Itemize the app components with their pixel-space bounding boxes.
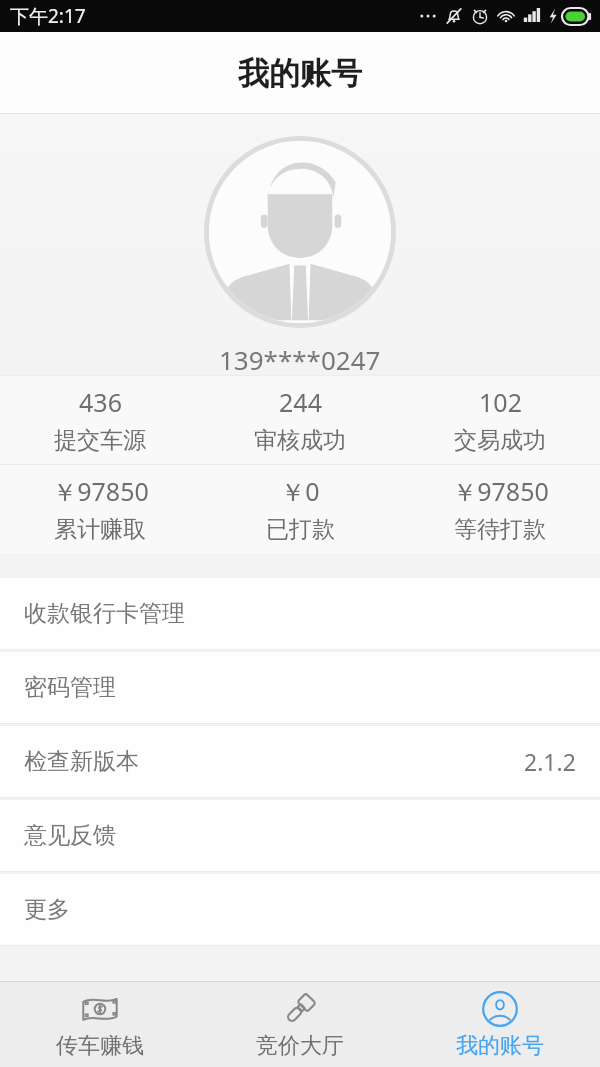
button[interactable]: 436 (0, 376, 200, 464)
button[interactable]: ￥0 (200, 465, 400, 553)
staticText: 139****0247 (219, 342, 381, 375)
staticText: 244 (279, 385, 322, 419)
staticText: 2.1.2 (524, 746, 576, 777)
staticText: 密码管理 (24, 673, 116, 702)
staticText: 我的账号 (456, 1032, 544, 1060)
staticText: 传车赚钱 (56, 1032, 144, 1060)
button[interactable]: ￥97850 (0, 465, 200, 553)
staticText: 竞价大厅 (256, 1032, 344, 1060)
staticText: ￥0 (280, 474, 320, 508)
staticText: ￥97850 (452, 474, 549, 508)
button[interactable]: 密码管理 (0, 651, 600, 724)
button[interactable]: 收款银行卡管理 (0, 577, 600, 650)
staticText: ￥97850 (52, 474, 149, 508)
staticText: 102 (479, 385, 522, 419)
button[interactable]: 传车赚钱 (0, 982, 200, 1067)
staticText: 审核成功 (254, 426, 346, 455)
staticText: 意见反馈 (24, 821, 116, 850)
button[interactable]: 意见反馈 (0, 799, 600, 872)
button[interactable]: 竞价大厅 (200, 982, 400, 1067)
button[interactable]: 我的账号 (400, 982, 600, 1067)
button[interactable]: ￥97850 (400, 465, 600, 553)
button[interactable]: 更多 (0, 873, 600, 946)
button[interactable]: 检查新版本 (0, 725, 600, 798)
button[interactable]: 244 (200, 376, 400, 464)
staticText: 检查新版本 (24, 747, 139, 776)
button[interactable]: Profile photo (204, 136, 396, 328)
staticText: 已打款 (266, 515, 335, 544)
staticText: 等待打款 (454, 515, 546, 544)
staticText: 累计赚取 (54, 515, 146, 544)
staticText: 更多 (24, 895, 70, 924)
staticText: 我的账号 (238, 54, 362, 93)
staticText: 收款银行卡管理 (24, 599, 185, 628)
staticText: 436 (79, 385, 122, 419)
staticText: 下午2:17 (10, 3, 86, 29)
staticText: 交易成功 (454, 426, 546, 455)
button[interactable]: 102 (400, 376, 600, 464)
staticText: 提交车源 (54, 426, 146, 455)
